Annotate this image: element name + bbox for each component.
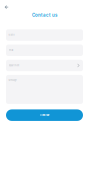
button[interactable]: Continue bbox=[6, 109, 83, 121]
button[interactable]: Back bbox=[2, 3, 12, 12]
staticText: Message bbox=[9, 79, 17, 81]
staticText: Continue bbox=[40, 114, 49, 117]
button[interactable]: Department bbox=[6, 60, 83, 71]
staticText: Email bbox=[9, 49, 13, 51]
staticText: Contact us bbox=[32, 13, 57, 18]
staticText: Department bbox=[9, 64, 20, 67]
staticText: Name bbox=[9, 34, 15, 36]
